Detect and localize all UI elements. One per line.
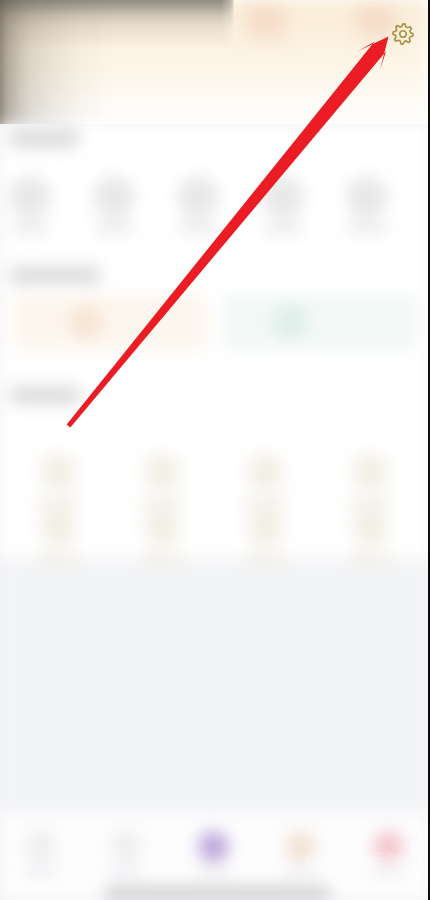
button[interactable] <box>248 455 282 489</box>
button[interactable] <box>373 831 404 862</box>
button[interactable] <box>12 294 208 350</box>
button[interactable] <box>41 455 75 489</box>
button[interactable] <box>93 176 135 218</box>
button[interactable]: Settings <box>391 22 415 46</box>
button[interactable] <box>145 455 179 489</box>
button[interactable] <box>222 294 418 350</box>
button[interactable] <box>198 831 229 862</box>
button[interactable] <box>41 510 75 544</box>
staticText: jingyan.baidu.com <box>304 873 400 888</box>
button[interactable] <box>262 176 304 218</box>
button[interactable] <box>285 831 316 862</box>
button[interactable] <box>353 455 387 489</box>
button[interactable] <box>346 176 388 218</box>
button[interactable] <box>248 510 282 544</box>
button[interactable] <box>353 510 387 544</box>
button[interactable] <box>177 176 219 218</box>
button[interactable] <box>9 176 51 218</box>
staticText: Baidu 经验 <box>304 848 407 875</box>
button[interactable] <box>145 510 179 544</box>
